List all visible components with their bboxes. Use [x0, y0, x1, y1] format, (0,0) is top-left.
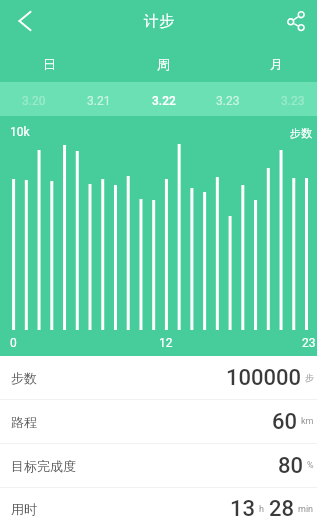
- staticText: 日: [43, 56, 56, 72]
- staticText: 3.22: [152, 94, 176, 108]
- staticText: 0: [10, 336, 17, 350]
- staticText: 目标完成度: [11, 458, 76, 474]
- staticText: 100000: [226, 365, 302, 391]
- staticText: 13: [230, 496, 256, 522]
- staticText: 步数: [290, 126, 312, 140]
- staticText: 步: [305, 372, 314, 383]
- button[interactable]: Share: [275, 0, 317, 42]
- staticText: 12: [159, 336, 173, 350]
- staticText: 3.23: [281, 94, 305, 108]
- staticText: 23: [302, 336, 316, 350]
- staticText: 路程: [11, 414, 37, 430]
- staticText: 周: [157, 56, 170, 72]
- staticText: 3.23: [216, 94, 240, 108]
- staticText: 月: [270, 56, 283, 72]
- button[interactable]: 日: [37, 46, 62, 82]
- button[interactable]: 3.23: [210, 85, 246, 116]
- button[interactable]: 目标完成度: [0, 444, 317, 487]
- button[interactable]: 3.20: [16, 85, 52, 116]
- button[interactable]: 路程: [0, 400, 317, 443]
- staticText: %: [307, 460, 314, 471]
- button[interactable]: 周: [151, 46, 176, 82]
- staticText: 3.21: [87, 94, 111, 108]
- staticText: 步数: [11, 370, 37, 386]
- button[interactable]: Back: [0, 0, 42, 42]
- button[interactable]: 月: [264, 46, 289, 82]
- button[interactable]: 3.23: [275, 85, 311, 116]
- staticText: h: [259, 504, 264, 515]
- staticText: 28: [269, 496, 295, 522]
- staticText: 60: [272, 409, 298, 435]
- staticText: 用时: [11, 501, 37, 517]
- button[interactable]: 3.22: [146, 85, 182, 116]
- button[interactable]: 用时: [0, 488, 317, 530]
- button[interactable]: 3.21: [81, 85, 117, 116]
- staticText: min: [298, 504, 314, 515]
- staticText: km: [301, 416, 314, 427]
- button[interactable]: 步数: [0, 356, 317, 399]
- staticText: 80: [278, 453, 304, 479]
- staticText: 10k: [10, 125, 30, 139]
- staticText: 3.20: [22, 94, 46, 108]
- staticText: 计步: [144, 12, 174, 31]
